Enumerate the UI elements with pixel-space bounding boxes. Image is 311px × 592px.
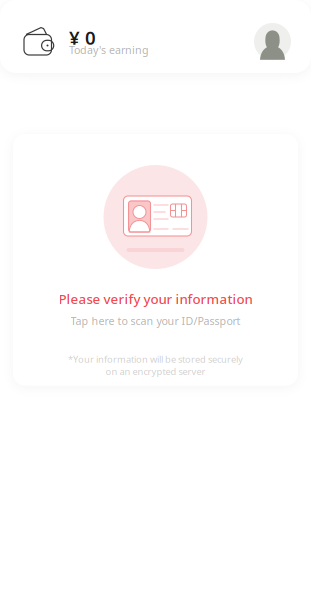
staticText: ¥ 0 [69,25,96,50]
button[interactable]: Wallet [24,27,55,56]
staticText: *Your information will be stored securel… [68,353,243,365]
staticText: Tap here to scan your ID/Passport [70,314,240,328]
staticText: Please verify your information [58,290,252,308]
staticText: on an encrypted server [105,365,205,378]
button[interactable]: Profile [254,23,291,60]
staticText: Today's earning [69,43,149,57]
button[interactable]: Please verify your information [0,134,311,386]
